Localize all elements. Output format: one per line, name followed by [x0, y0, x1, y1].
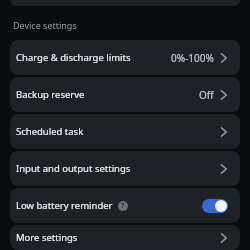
staticText: Scheduled task — [16, 125, 84, 138]
staticText: ? — [121, 201, 125, 211]
button[interactable]: Low battery reminder — [10, 188, 240, 223]
button[interactable]: Scheduled task — [10, 114, 240, 149]
staticText: Low battery reminder — [16, 199, 113, 212]
staticText: Charge & discharge limits — [16, 51, 131, 64]
staticText: 0%-100% — [171, 51, 214, 65]
button[interactable]: Charge & discharge limits — [10, 40, 240, 75]
button[interactable]: Input and output settings — [10, 151, 240, 186]
button[interactable] — [202, 199, 228, 213]
staticText: Backup reserve — [16, 88, 85, 101]
staticText: Off — [199, 88, 214, 102]
button[interactable]: More settings — [10, 225, 240, 250]
staticText: More settings — [16, 231, 78, 244]
staticText: Input and output settings — [16, 162, 131, 175]
button[interactable]: Backup reserve — [10, 77, 240, 112]
staticText: Device settings — [13, 19, 77, 31]
